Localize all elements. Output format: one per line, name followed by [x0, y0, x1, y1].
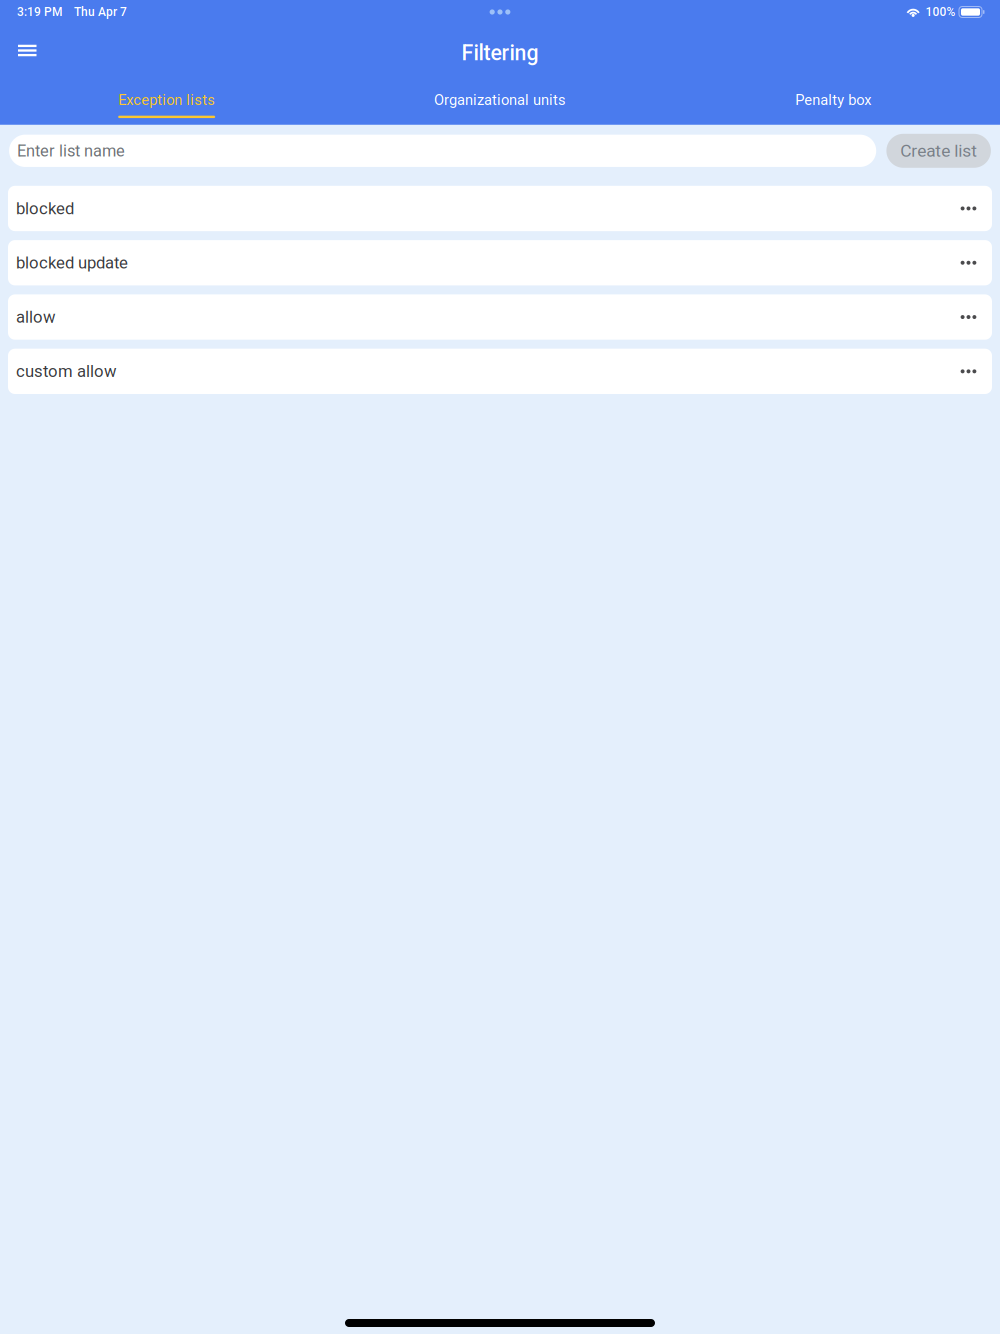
button[interactable]: blocked	[8, 186, 992, 231]
button[interactable]: Penalty box	[667, 85, 1000, 115]
button[interactable]: More options for blocked update	[955, 250, 981, 276]
button[interactable]: custom allow	[8, 349, 992, 394]
staticText: Penalty box	[795, 91, 871, 109]
staticText: Filtering	[461, 40, 538, 65]
staticText: 3:19 PM	[17, 5, 62, 19]
button[interactable]: Enter list name	[9, 135, 876, 167]
button[interactable]: More options for allow	[955, 304, 981, 330]
staticText: blocked	[16, 199, 74, 218]
button[interactable]: Organizational units	[333, 85, 667, 115]
button[interactable]: More options for blocked	[955, 195, 981, 221]
staticText: blocked update	[16, 253, 128, 272]
staticText: Exception lists	[118, 91, 215, 109]
staticText: Organizational units	[434, 91, 566, 109]
button[interactable]: More options for custom allow	[955, 358, 981, 384]
staticText: custom allow	[16, 362, 117, 381]
button[interactable]: Menu	[18, 37, 56, 63]
staticText: Create list	[900, 141, 977, 161]
button[interactable]: Exception lists	[0, 85, 333, 115]
staticText: 100%	[925, 5, 955, 19]
staticText: Enter list name	[17, 141, 125, 160]
staticText: Thu Apr 7	[74, 5, 127, 19]
button[interactable]: Create list	[886, 134, 991, 168]
staticText: allow	[16, 307, 56, 327]
button[interactable]: blocked update	[8, 240, 992, 285]
button[interactable]: allow	[8, 294, 992, 340]
